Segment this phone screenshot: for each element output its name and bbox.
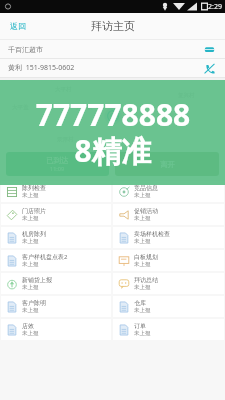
- staticText: 白板规划: [134, 253, 158, 261]
- staticText: 订单: [134, 322, 146, 330]
- button[interactable]: 黄利 151-9815-0602: [0, 59, 225, 77]
- staticText: 未上报: [134, 307, 151, 314]
- button[interactable]: 拜访总结: [113, 273, 224, 294]
- button[interactable]: 白板规划: [113, 250, 224, 271]
- button[interactable]: 新铺货上报: [1, 273, 111, 294]
- staticText: 未上报: [134, 238, 151, 245]
- staticText: 未上报: [134, 192, 151, 199]
- button[interactable]: Current location: [102, 105, 124, 127]
- button[interactable]: 已到达: [6, 152, 109, 176]
- staticText: 未上报: [22, 215, 39, 222]
- staticText: 未上报: [22, 307, 39, 314]
- staticText: 已到达: [46, 156, 69, 165]
- button[interactable]: 机房陈列: [1, 227, 111, 248]
- button[interactable]: 促销活动: [113, 204, 224, 225]
- staticText: 未上报: [22, 284, 39, 291]
- staticText: 未上报: [22, 261, 39, 268]
- staticText: 黄利 151-9815-0602: [8, 63, 201, 73]
- button[interactable]: 返回: [6, 18, 30, 34]
- staticText: 未上报: [134, 215, 151, 222]
- staticText: 拜访总结: [134, 276, 158, 284]
- staticText: 竞品信息: [134, 184, 158, 192]
- button[interactable]: 仓库: [113, 296, 224, 317]
- staticText: 大石坝: [76, 104, 93, 111]
- button[interactable]: 卖场样机检查: [113, 227, 224, 248]
- staticText: 新铺货上报: [22, 276, 52, 284]
- button[interactable]: 竞品信息: [113, 181, 224, 202]
- staticText: 未上报: [134, 284, 151, 291]
- button[interactable]: 订单: [113, 319, 224, 340]
- button[interactable]: 离开: [115, 152, 219, 176]
- staticText: 11:09: [50, 165, 65, 172]
- staticText: 仓库: [134, 299, 146, 307]
- staticText: 未上报: [134, 261, 151, 268]
- staticText: 7777788888精准: [28, 94, 198, 171]
- staticText: 门店照片: [22, 207, 46, 215]
- staticText: 客户陈明: [22, 299, 46, 307]
- button[interactable]: 客户陈明: [1, 296, 111, 317]
- staticText: 未上报: [134, 330, 151, 337]
- staticText: 拜访主页: [91, 19, 135, 33]
- staticText: 离开: [160, 160, 175, 169]
- staticText: 未上报: [22, 238, 39, 245]
- button[interactable]: Store: [201, 41, 217, 57]
- staticText: 客户样机盘点表2: [22, 253, 68, 261]
- button[interactable]: 陈列检查: [1, 181, 111, 202]
- staticText: 千百汇超市: [8, 45, 201, 54]
- button[interactable]: 店效: [1, 319, 111, 340]
- staticText: 机房陈列: [22, 230, 46, 238]
- button[interactable]: Call: [201, 60, 217, 76]
- staticText: 未上报: [22, 330, 39, 337]
- button[interactable]: 客户样机盘点表2: [1, 250, 111, 271]
- staticText: 促销活动: [134, 207, 158, 215]
- staticText: 卖场样机检查: [134, 230, 170, 238]
- staticText: 返回: [10, 21, 26, 31]
- staticText: 店效: [22, 322, 34, 330]
- staticText: 2:29: [208, 2, 222, 12]
- button[interactable]: 门店照片: [1, 204, 111, 225]
- staticText: 陈列检查: [22, 184, 46, 192]
- button[interactable]: 千百汇超市: [0, 40, 225, 58]
- staticText: 未上报: [22, 192, 39, 199]
